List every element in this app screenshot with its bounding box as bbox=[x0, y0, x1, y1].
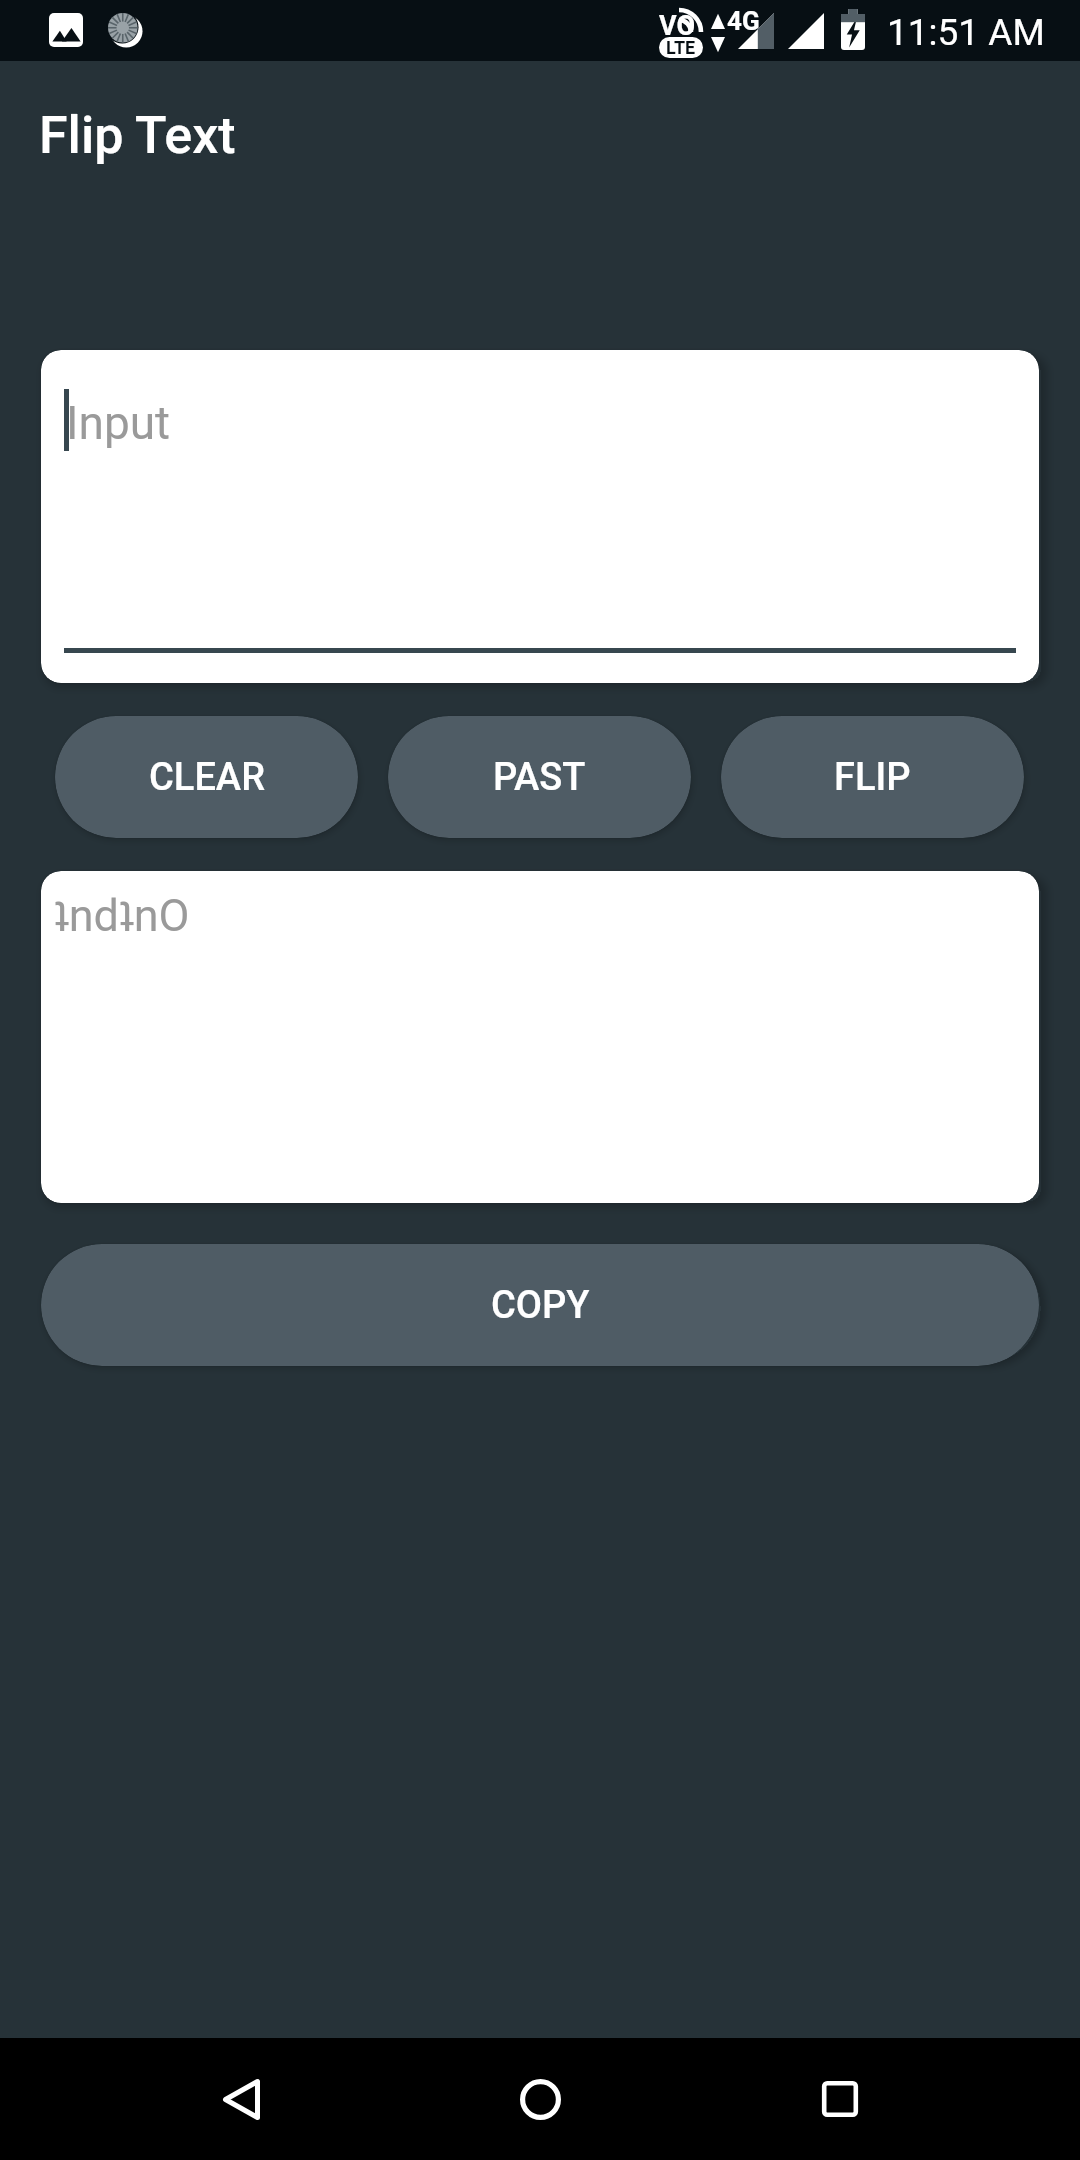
button[interactable]: Back bbox=[181, 2039, 301, 2159]
staticText: CLEAR bbox=[149, 755, 265, 800]
staticText: FLIP bbox=[834, 755, 911, 800]
button[interactable]: ʇndʇnO bbox=[41, 871, 1039, 1203]
staticText: ʇndʇnO bbox=[54, 889, 190, 942]
button[interactable]: COPY bbox=[41, 1244, 1039, 1366]
button[interactable]: Recents bbox=[780, 2039, 900, 2159]
staticText: LTE bbox=[666, 37, 696, 58]
button[interactable]: PAST bbox=[388, 716, 691, 838]
button[interactable]: Home bbox=[480, 2039, 600, 2159]
staticText: 11:51 AM bbox=[887, 11, 1045, 54]
button[interactable]: FLIP bbox=[721, 716, 1024, 838]
staticText: VO bbox=[659, 10, 696, 42]
button[interactable]: CLEAR bbox=[55, 716, 358, 838]
staticText: Input bbox=[66, 396, 171, 450]
staticText: COPY bbox=[491, 1283, 590, 1328]
staticText: 4G bbox=[727, 6, 760, 36]
staticText: Flip Text bbox=[39, 105, 236, 166]
staticText: PAST bbox=[493, 755, 586, 800]
button[interactable]: Input bbox=[41, 350, 1039, 683]
